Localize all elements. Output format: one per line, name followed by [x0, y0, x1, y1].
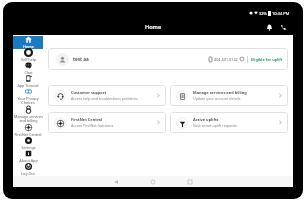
staticText: Access help and troubleshoot problems	[71, 96, 138, 101]
button[interactable]: Self help	[13, 49, 43, 62]
button[interactable]: Active uplifts	[170, 112, 288, 133]
button[interactable]: Call	[277, 21, 289, 33]
button[interactable]: Back	[110, 176, 122, 187]
button[interactable]: Chat	[13, 62, 43, 75]
button[interactable]: Home	[13, 36, 43, 49]
button[interactable]: Customer support	[48, 85, 166, 106]
button[interactable]: About App	[13, 150, 43, 163]
staticText: Chat	[24, 70, 33, 75]
button[interactable]: test aa	[48, 48, 288, 70]
button[interactable]: Log Out	[13, 163, 43, 176]
staticText: Home	[145, 23, 162, 31]
staticText: Your Privacy Choices	[17, 96, 39, 106]
staticText: Access FirstNet functions	[71, 123, 114, 128]
staticText: Update your account details	[193, 96, 241, 101]
button[interactable]: Your Privacy Choices	[13, 88, 43, 106]
staticText: Eligible for uplift	[251, 57, 283, 62]
button[interactable]: Settings	[13, 137, 43, 150]
staticText: FirstNet Central	[71, 117, 103, 122]
staticText: Settings	[21, 145, 36, 150]
staticText: Customer support	[71, 90, 107, 95]
staticText: Manage services and billing	[193, 90, 247, 95]
button[interactable]: Manage services and billing	[170, 85, 288, 106]
staticText: FirstNet Central	[14, 132, 42, 137]
staticText: About App	[19, 158, 38, 163]
staticText: 32%	[259, 11, 267, 16]
button[interactable]: Notifications	[263, 21, 275, 33]
staticText: App Tutorial	[17, 83, 39, 88]
staticText: 404.401.0142	[214, 57, 238, 62]
staticText: Home	[23, 44, 34, 49]
button[interactable]: Recents	[184, 176, 196, 187]
staticText: 10:34 PM	[272, 11, 290, 16]
staticText: Active uplifts	[193, 117, 219, 122]
staticText: Manage services and billing	[14, 114, 43, 124]
button[interactable]: FirstNet Central	[13, 124, 43, 137]
button[interactable]: Home	[147, 176, 159, 187]
staticText: test aa	[73, 56, 89, 62]
staticText: Log Out	[21, 171, 35, 176]
staticText: View active uplift requests	[193, 123, 237, 128]
staticText: Self help	[21, 57, 36, 62]
button[interactable]: FirstNet Central	[48, 112, 166, 133]
button[interactable]: Manage services and billing	[13, 106, 43, 124]
button[interactable]: App Tutorial	[13, 75, 43, 88]
